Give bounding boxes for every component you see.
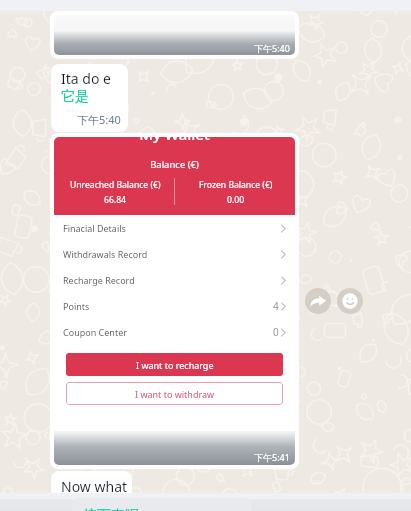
button[interactable]: Withdrawals Record	[54, 241, 295, 267]
staticText: 接下來呢	[83, 507, 139, 511]
staticText: Unreached Balance (€)	[70, 179, 161, 191]
staticText: Withdrawals Record	[63, 248, 148, 260]
staticText: 它是	[61, 88, 89, 106]
button[interactable]: Points	[54, 293, 295, 319]
staticText: Ita do e	[61, 69, 111, 88]
staticText: Frozen Balance (€)	[199, 179, 273, 191]
staticText: Coupon Center	[63, 326, 127, 338]
button[interactable]: Coupon Center	[54, 319, 295, 345]
staticText: 66.84	[104, 194, 126, 206]
button[interactable]: Forward	[305, 288, 331, 314]
staticText: 4	[273, 299, 279, 313]
button[interactable]: Finacial Details	[54, 215, 295, 241]
button[interactable]: I want to recharge	[66, 353, 283, 376]
staticText: 0.00	[227, 194, 245, 206]
staticText: 下午5:40	[77, 112, 121, 127]
staticText: My Wallet	[54, 137, 295, 144]
staticText: Now what	[61, 477, 132, 496]
staticText: Points	[63, 300, 90, 312]
staticText: Recharge Record	[63, 274, 135, 286]
button[interactable]: React	[337, 288, 363, 314]
staticText: 下午5:41	[254, 451, 290, 463]
staticText: Balance (€)	[54, 158, 295, 171]
button[interactable]: Recharge Record	[54, 267, 295, 293]
staticText: Finacial Details	[63, 222, 126, 234]
staticText: 0	[273, 325, 279, 339]
staticText: I want to recharge	[136, 359, 214, 371]
staticText: I want to withdraw	[135, 388, 215, 400]
staticText: 下午5:40	[254, 42, 290, 54]
button[interactable]: I want to withdraw	[66, 382, 283, 405]
